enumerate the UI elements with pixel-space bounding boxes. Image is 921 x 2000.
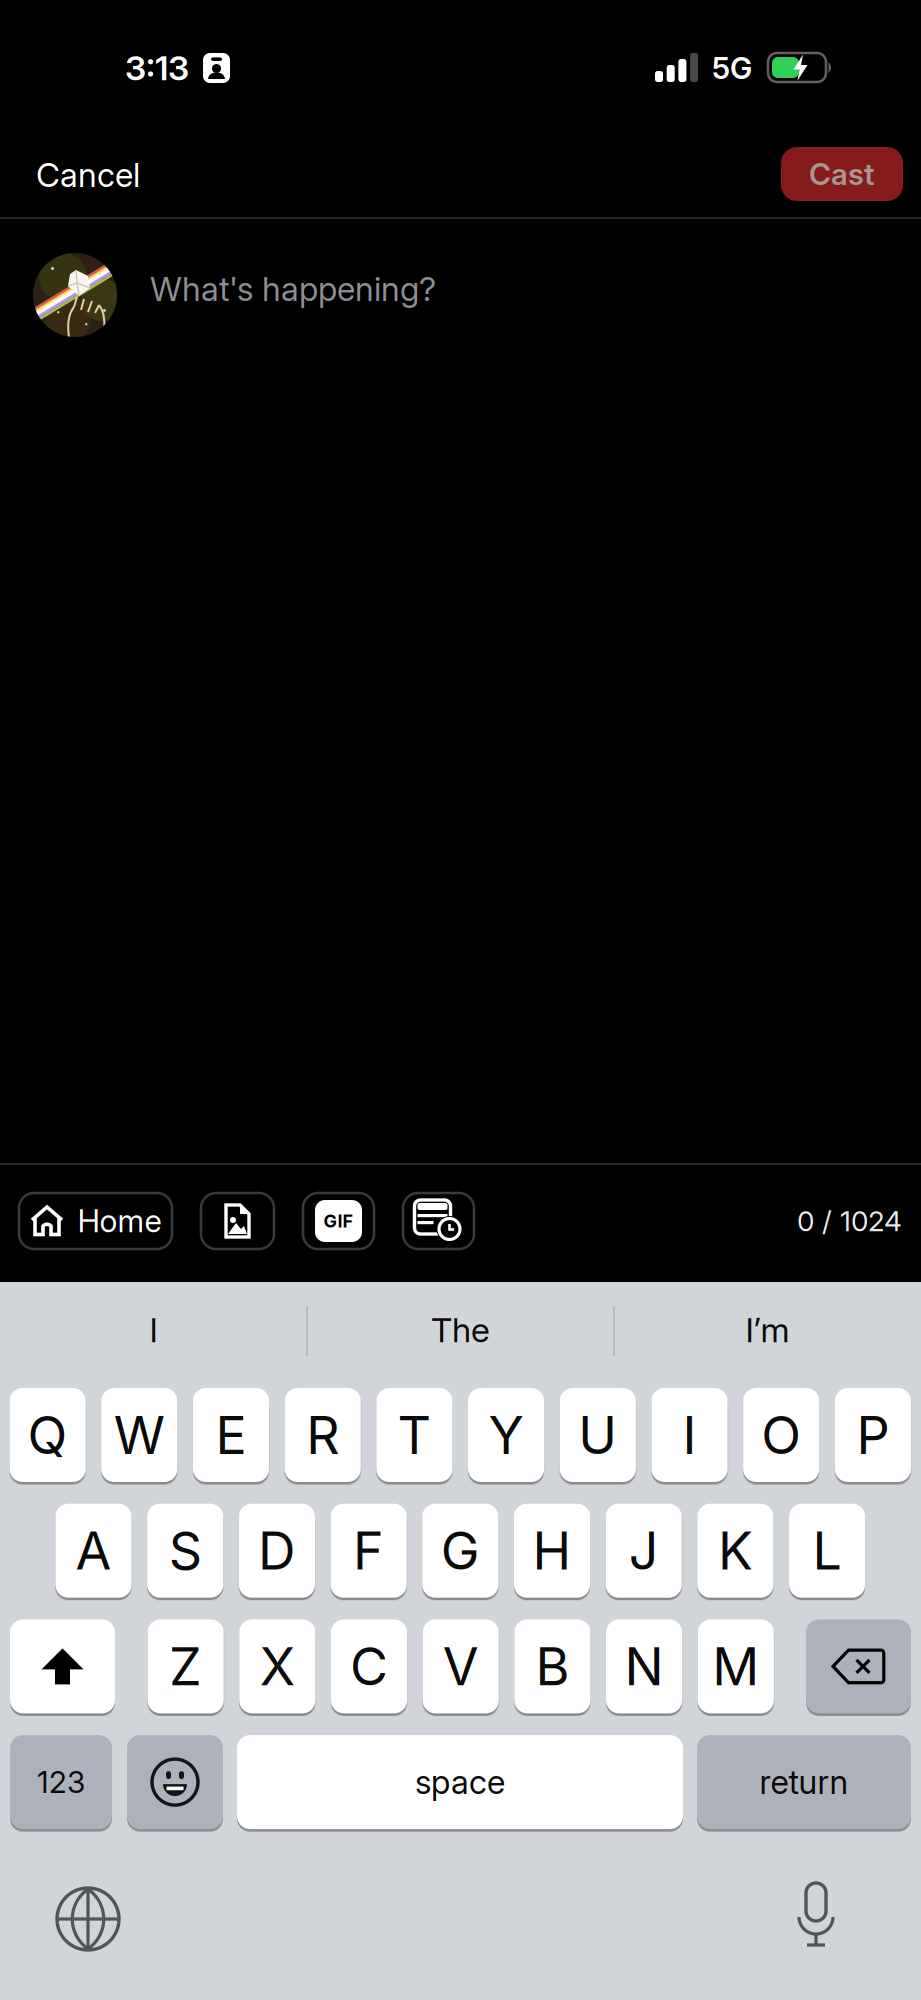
staticText: The xyxy=(431,1309,490,1350)
staticText: K xyxy=(718,1519,753,1582)
staticText: D xyxy=(258,1519,296,1582)
staticText: L xyxy=(813,1519,842,1582)
staticText: M xyxy=(712,1635,759,1698)
button[interactable]: The xyxy=(307,1282,614,1378)
button[interactable]: U xyxy=(560,1388,636,1482)
button[interactable]: B xyxy=(514,1619,590,1713)
button[interactable]: E xyxy=(193,1388,269,1482)
button[interactable]: S xyxy=(147,1504,223,1598)
staticText: T xyxy=(397,1403,431,1466)
button[interactable]: T xyxy=(376,1388,452,1482)
staticText: What's happening? xyxy=(150,269,436,309)
button[interactable]: N xyxy=(606,1619,682,1713)
staticText: V xyxy=(443,1635,479,1698)
button[interactable]: Dictation xyxy=(806,1883,848,1947)
staticText: U xyxy=(578,1403,617,1466)
button[interactable]: Next keyboard xyxy=(57,1888,119,1950)
staticText: Y xyxy=(489,1403,524,1466)
staticText: A xyxy=(75,1519,111,1582)
staticText: R xyxy=(306,1403,339,1466)
button[interactable]: W xyxy=(101,1388,177,1482)
staticText: I xyxy=(149,1309,157,1350)
button[interactable]: Cast xyxy=(781,147,903,201)
button[interactable]: Add frame xyxy=(403,1193,474,1249)
button[interactable]: P xyxy=(835,1388,911,1482)
button[interactable]: X xyxy=(239,1619,315,1713)
staticText: P xyxy=(856,1403,889,1466)
staticText: I xyxy=(682,1403,696,1466)
button[interactable]: J xyxy=(606,1504,682,1598)
staticText: I’m xyxy=(745,1309,789,1350)
button[interactable]: Y xyxy=(468,1388,544,1482)
staticText: 5G xyxy=(712,50,752,86)
staticText: Q xyxy=(28,1403,68,1466)
button[interactable]: Add GIF xyxy=(303,1193,374,1249)
button[interactable]: Shift xyxy=(10,1619,115,1713)
button[interactable]: Delete xyxy=(806,1619,911,1713)
staticText: B xyxy=(535,1635,569,1698)
staticText: O xyxy=(761,1403,801,1466)
button[interactable]: space xyxy=(237,1735,683,1829)
button[interactable]: H xyxy=(514,1504,590,1598)
button[interactable]: Z xyxy=(147,1619,224,1713)
button[interactable]: Cancel xyxy=(0,110,140,205)
staticText: 123 xyxy=(37,1764,85,1800)
staticText: W xyxy=(114,1403,165,1466)
staticText: 3:13 xyxy=(125,47,189,88)
staticText: Home xyxy=(77,1202,161,1240)
button[interactable]: M xyxy=(698,1619,774,1713)
button[interactable]: O xyxy=(743,1388,819,1482)
staticText: N xyxy=(625,1635,664,1698)
button[interactable]: V xyxy=(423,1619,499,1713)
staticText: Cast xyxy=(809,156,875,192)
button[interactable]: C xyxy=(331,1619,407,1713)
button[interactable]: Emoji xyxy=(127,1735,223,1829)
button[interactable]: F xyxy=(330,1504,407,1598)
button[interactable]: I xyxy=(0,1282,307,1378)
staticText: GIF xyxy=(323,1210,353,1232)
staticText: C xyxy=(350,1635,388,1698)
staticText: 0 / 1024 xyxy=(797,1204,902,1238)
button[interactable]: K xyxy=(697,1504,773,1598)
staticText: Cancel xyxy=(36,155,140,195)
button[interactable]: Home xyxy=(19,1193,172,1249)
button[interactable]: Q xyxy=(9,1388,86,1482)
button[interactable]: R xyxy=(285,1388,361,1482)
button[interactable]: 123 xyxy=(10,1735,112,1829)
button[interactable]: D xyxy=(239,1504,315,1598)
staticText: E xyxy=(215,1403,246,1466)
button[interactable]: I xyxy=(651,1388,728,1482)
button[interactable]: A xyxy=(55,1504,132,1598)
staticText: G xyxy=(441,1519,480,1582)
button[interactable]: Add photo xyxy=(201,1193,274,1249)
button[interactable]: G xyxy=(422,1504,498,1598)
button[interactable]: L xyxy=(789,1504,865,1598)
staticText: J xyxy=(629,1519,659,1582)
button[interactable]: I’m xyxy=(614,1282,921,1378)
staticText: space xyxy=(415,1762,505,1802)
staticText: return xyxy=(759,1762,848,1802)
staticText: X xyxy=(260,1635,295,1698)
button[interactable]: return xyxy=(697,1735,911,1829)
staticText: S xyxy=(169,1519,202,1582)
staticText: H xyxy=(532,1519,571,1582)
staticText: Z xyxy=(169,1635,202,1698)
staticText: F xyxy=(353,1519,384,1582)
